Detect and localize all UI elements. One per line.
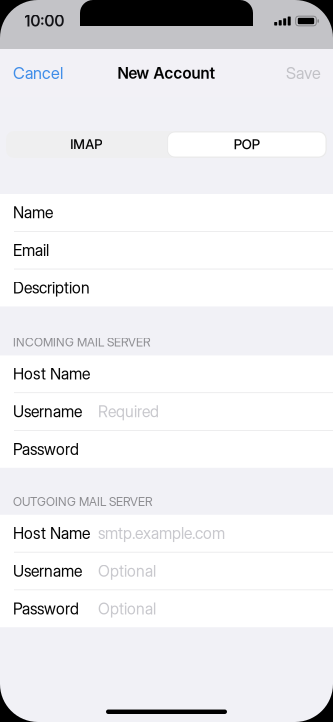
button[interactable]: Save	[286, 49, 333, 97]
staticText: INCOMING MAIL SERVER	[13, 335, 151, 349]
button[interactable]: Host Name	[0, 515, 333, 552]
staticText: New Account	[117, 63, 215, 82]
button[interactable]: Username	[0, 552, 333, 589]
button[interactable]: Email	[0, 232, 333, 269]
staticText: Host Name	[13, 524, 90, 543]
staticText: Save	[286, 63, 321, 83]
staticText: Username	[13, 402, 82, 421]
staticText: Cancel	[13, 63, 63, 83]
button[interactable]: IMAP	[6, 131, 166, 158]
button[interactable]: Host Name	[0, 355, 333, 392]
staticText: Description	[13, 278, 90, 297]
staticText: Host Name	[13, 364, 90, 383]
staticText: Optional	[98, 561, 156, 580]
staticText: Password	[13, 440, 79, 459]
staticText: Username	[13, 561, 82, 580]
staticText: smtp.example.com	[98, 524, 225, 543]
button[interactable]: Password	[0, 431, 333, 468]
button[interactable]: Name	[0, 194, 333, 231]
staticText: Optional	[98, 599, 156, 618]
staticText: Required	[98, 402, 159, 421]
button[interactable]: Cancel	[0, 49, 63, 97]
button[interactable]: Username	[0, 393, 333, 430]
button[interactable]: Description	[0, 269, 333, 306]
staticText: OUTGOING MAIL SERVER	[13, 494, 153, 509]
staticText: Email	[13, 241, 49, 260]
staticText: Password	[13, 599, 79, 618]
staticText: 10:00	[24, 12, 64, 30]
staticText: IMAP	[70, 136, 102, 152]
button[interactable]: POP	[166, 131, 327, 158]
button[interactable]: Password	[0, 590, 333, 627]
staticText: Name	[13, 203, 53, 222]
staticText: POP	[234, 136, 260, 152]
